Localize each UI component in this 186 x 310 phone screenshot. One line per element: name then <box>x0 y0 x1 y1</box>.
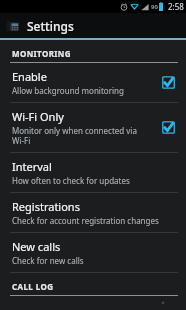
staticText: 90 <box>151 3 158 11</box>
staticText: New calls <box>12 239 61 254</box>
staticText: Monitor only when connected via Wi-Fi <box>12 125 137 146</box>
button[interactable]: New calls <box>0 233 186 272</box>
staticText: Wi-Fi Only <box>12 109 64 124</box>
staticText: Check for new calls <box>12 255 84 266</box>
button[interactable]: Interval <box>0 153 186 192</box>
staticText: 2:58 <box>168 1 184 12</box>
staticText: CALL LOG <box>12 281 54 292</box>
staticText: Registrations <box>12 199 80 214</box>
button[interactable]: Show Incoming <box>0 296 186 310</box>
staticText: Settings <box>27 18 74 34</box>
button[interactable]: Toggle setting <box>161 120 176 135</box>
button[interactable]: Enable <box>0 63 186 102</box>
staticText: Enable <box>12 69 47 84</box>
button[interactable]: Registrations <box>0 193 186 232</box>
staticText: Interval <box>12 159 52 174</box>
staticText: Check for account registration changes <box>12 215 159 226</box>
button[interactable]: Settings <box>0 13 186 38</box>
button[interactable]: Wi-Fi Only <box>0 103 186 152</box>
button[interactable]: Toggle setting <box>161 75 176 90</box>
staticText: How often to check for updates <box>12 175 130 186</box>
staticText: MONITORING <box>12 48 71 59</box>
staticText: Allow background monitoring <box>12 85 124 96</box>
button[interactable]: Toggle setting <box>161 302 176 304</box>
